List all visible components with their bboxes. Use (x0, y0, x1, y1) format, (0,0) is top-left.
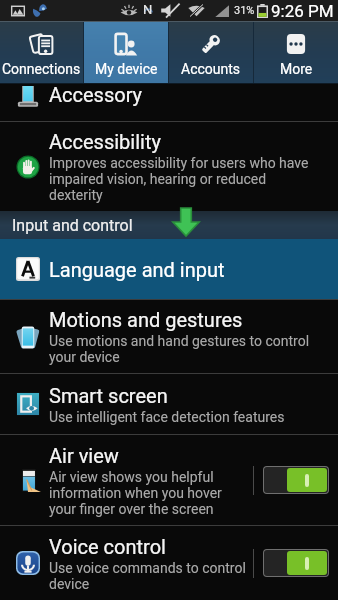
staticText: 31% (234, 4, 255, 17)
button[interactable]: Toggle Voice control (264, 550, 328, 576)
staticText: Accessibility (49, 130, 161, 153)
staticText: N (143, 2, 153, 17)
button[interactable]: Air view (0, 435, 253, 525)
button[interactable]: Motions and gestures (0, 300, 338, 373)
button[interactable]: More (254, 21, 338, 84)
button[interactable]: Language and input (0, 239, 338, 299)
staticText: Language and input (49, 258, 225, 281)
staticText: Improves accessibility for users who hav… (49, 155, 315, 203)
staticText: My device (95, 61, 158, 77)
button[interactable]: Accessory (0, 84, 338, 121)
staticText: Smart screen (49, 384, 168, 407)
button[interactable]: Toggle Air view (264, 467, 328, 493)
staticText: Voice control (49, 535, 166, 558)
staticText: 9:26 PM (271, 1, 334, 21)
staticText: Accessory (49, 83, 143, 106)
staticText: Use voice commands to control device (49, 560, 249, 592)
button[interactable]: Accounts (169, 21, 253, 84)
staticText: Use intelligent face detection features (49, 409, 285, 425)
button[interactable]: Smart screen (0, 374, 338, 434)
staticText: Air view shows you helpful information w… (49, 469, 249, 517)
button[interactable]: Accessibility (0, 122, 338, 211)
staticText: More (280, 61, 313, 77)
button[interactable]: Connections (0, 21, 83, 84)
button[interactable]: My device (84, 21, 168, 84)
staticText: Input and control (12, 216, 133, 235)
staticText: Air view (49, 444, 119, 467)
staticText: Connections (2, 61, 81, 77)
staticText: Use motions and hand gestures to control… (49, 333, 315, 365)
button[interactable]: Voice control (0, 526, 253, 600)
staticText: Accounts (181, 61, 241, 77)
staticText: Motions and gestures (49, 308, 243, 331)
